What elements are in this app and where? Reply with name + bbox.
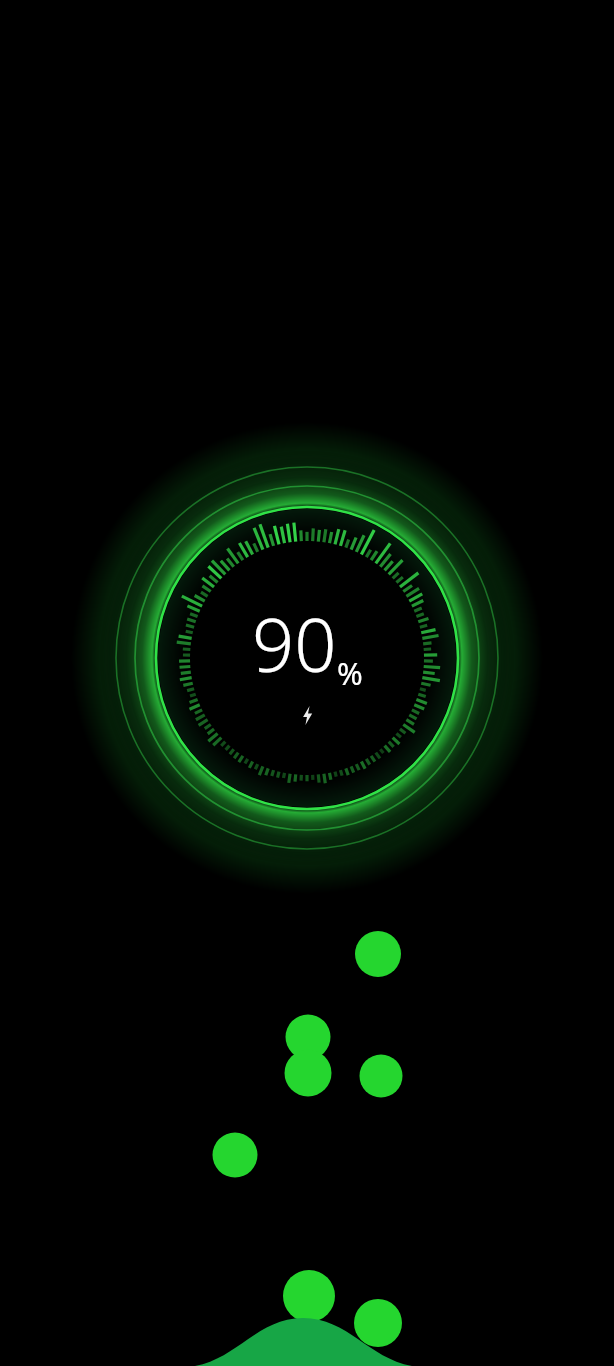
button[interactable]: Battery 90 percent, charging (0, 0, 614, 1366)
staticText: 90 (252, 593, 337, 694)
staticText: % (337, 652, 363, 694)
